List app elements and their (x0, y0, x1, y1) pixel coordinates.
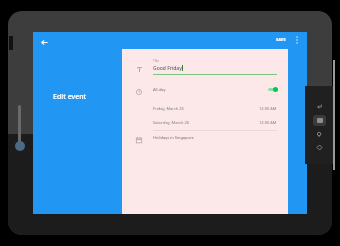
staticText: All-day (153, 87, 166, 92)
button[interactable]: Search (315, 130, 324, 139)
staticText: Title (153, 59, 159, 63)
button[interactable]: More options (291, 34, 303, 46)
staticText: 12:00 AM (259, 120, 277, 125)
button[interactable]: SAVE (274, 35, 288, 44)
staticText: 12:00 AM (259, 106, 277, 111)
button[interactable]: Back (36, 34, 52, 50)
staticText: Friday, March 25 (153, 106, 184, 111)
button[interactable]: Saturday, March 26 (148, 115, 282, 129)
button[interactable]: All-day (148, 82, 282, 96)
button[interactable]: Back (314, 101, 324, 111)
staticText: SAVE (276, 37, 286, 42)
button[interactable]: Good Friday (153, 65, 182, 72)
staticText: Holidays in Singapore (153, 135, 194, 140)
button[interactable]: Friday, March 25 (148, 101, 282, 115)
button[interactable]: Recent apps (315, 143, 324, 152)
button[interactable]: Holidays in Singapore (148, 130, 282, 144)
staticText: Edit event (53, 92, 87, 102)
button[interactable]: Home (313, 115, 326, 126)
staticText: Saturday, March 26 (153, 120, 190, 125)
